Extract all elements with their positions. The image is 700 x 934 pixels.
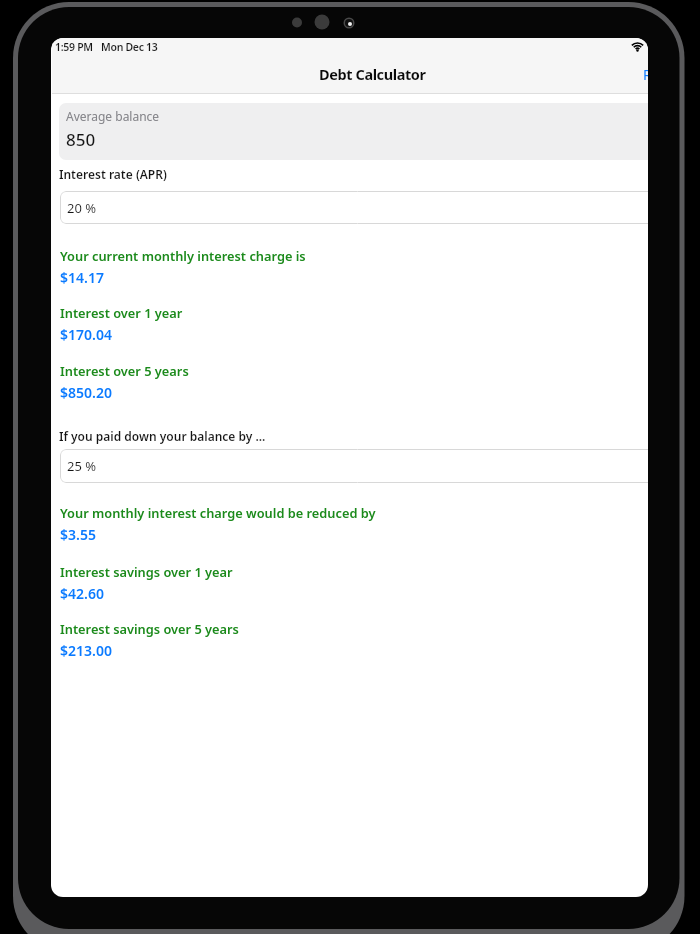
- button[interactable]: Average balance: [59, 103, 648, 160]
- staticText: $42.60: [60, 584, 104, 603]
- staticText: $170.04: [60, 325, 112, 344]
- staticText: $850.20: [60, 383, 112, 402]
- button[interactable]: 25 %: [60, 449, 648, 483]
- staticText: 850: [66, 128, 96, 151]
- staticText: Interest rate (APR): [59, 166, 167, 182]
- staticText: $213.00: [60, 641, 112, 660]
- staticText: $3.55: [60, 525, 96, 544]
- button[interactable]: 20 %: [60, 191, 648, 224]
- staticText: 20 %: [67, 199, 97, 217]
- staticText: Interest savings over 1 year: [60, 563, 233, 580]
- staticText: Your current monthly interest charge is: [60, 247, 306, 264]
- staticText: Your monthly interest charge would be re…: [60, 504, 376, 521]
- staticText: Interest over 5 years: [60, 362, 189, 379]
- staticText: Mon Dec 13: [101, 40, 158, 54]
- staticText: $14.17: [60, 268, 104, 287]
- staticText: 25 %: [67, 457, 97, 475]
- staticText: 1:59 PM: [55, 40, 93, 54]
- staticText: Interest savings over 5 years: [60, 620, 239, 637]
- staticText: Interest over 1 year: [60, 304, 183, 321]
- staticText: Debt Calculator: [319, 64, 426, 84]
- staticText: If you paid down your balance by ...: [59, 428, 266, 444]
- staticText: Average balance: [66, 108, 160, 124]
- button[interactable]: Reset: [643, 65, 648, 84]
